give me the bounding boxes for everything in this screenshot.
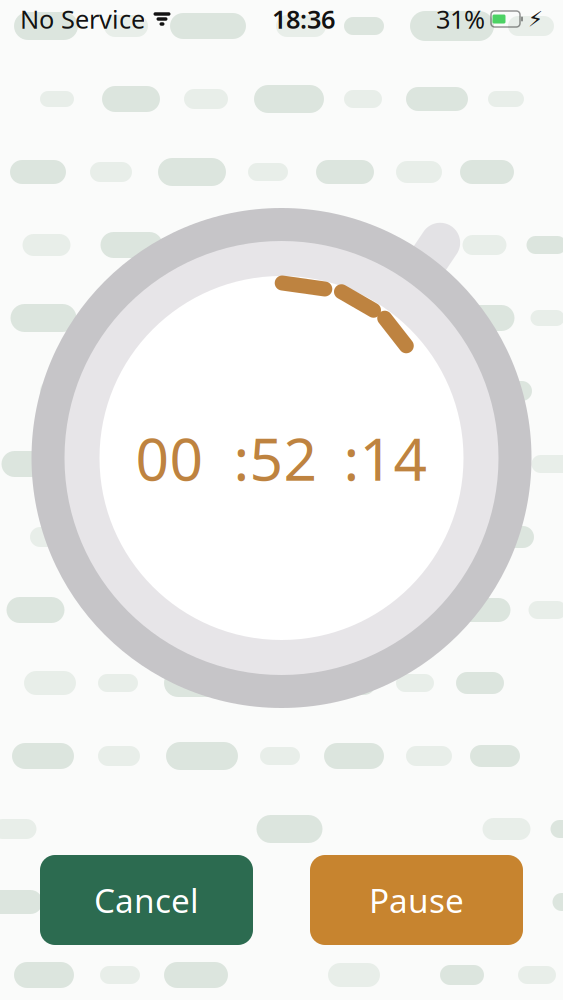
staticText: 31%	[436, 2, 485, 36]
staticText: ⚡︎	[528, 7, 543, 31]
staticText: :14	[343, 419, 427, 497]
staticText: :52	[233, 419, 317, 497]
staticText: Cancel	[94, 878, 199, 922]
staticText: Pause	[369, 878, 464, 922]
button[interactable]: Cancel	[40, 855, 253, 945]
button[interactable]: Pause	[310, 855, 523, 945]
staticText: 18:36	[272, 2, 335, 36]
staticText: No Service	[20, 2, 145, 36]
staticText: 00	[135, 419, 203, 497]
